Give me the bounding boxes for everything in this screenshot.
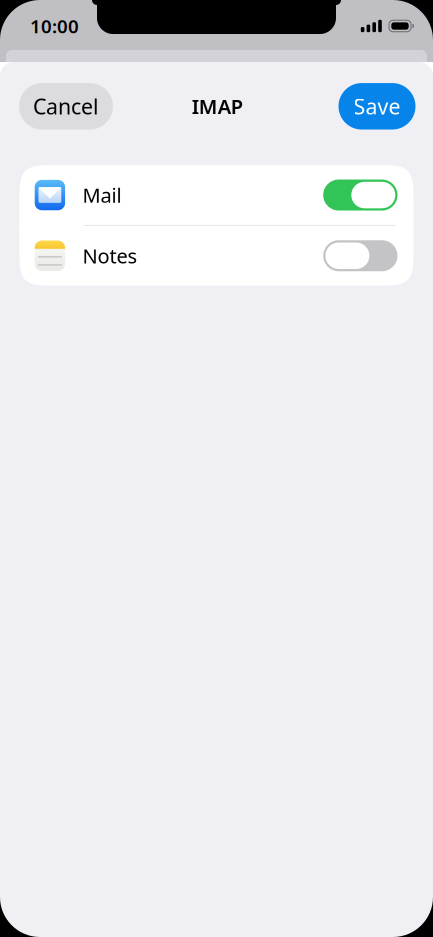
button[interactable]: Mail bbox=[19, 165, 413, 225]
staticText: Save bbox=[353, 92, 400, 120]
staticText: IMAP bbox=[192, 93, 243, 120]
staticText: Cancel bbox=[33, 92, 99, 120]
button[interactable]: Save bbox=[338, 83, 415, 129]
button[interactable]: Cancel bbox=[19, 83, 113, 129]
staticText: Mail bbox=[83, 182, 122, 208]
staticText: Notes bbox=[83, 242, 138, 269]
staticText: 10:00 bbox=[30, 14, 79, 38]
button[interactable]: Notes bbox=[19, 226, 413, 286]
